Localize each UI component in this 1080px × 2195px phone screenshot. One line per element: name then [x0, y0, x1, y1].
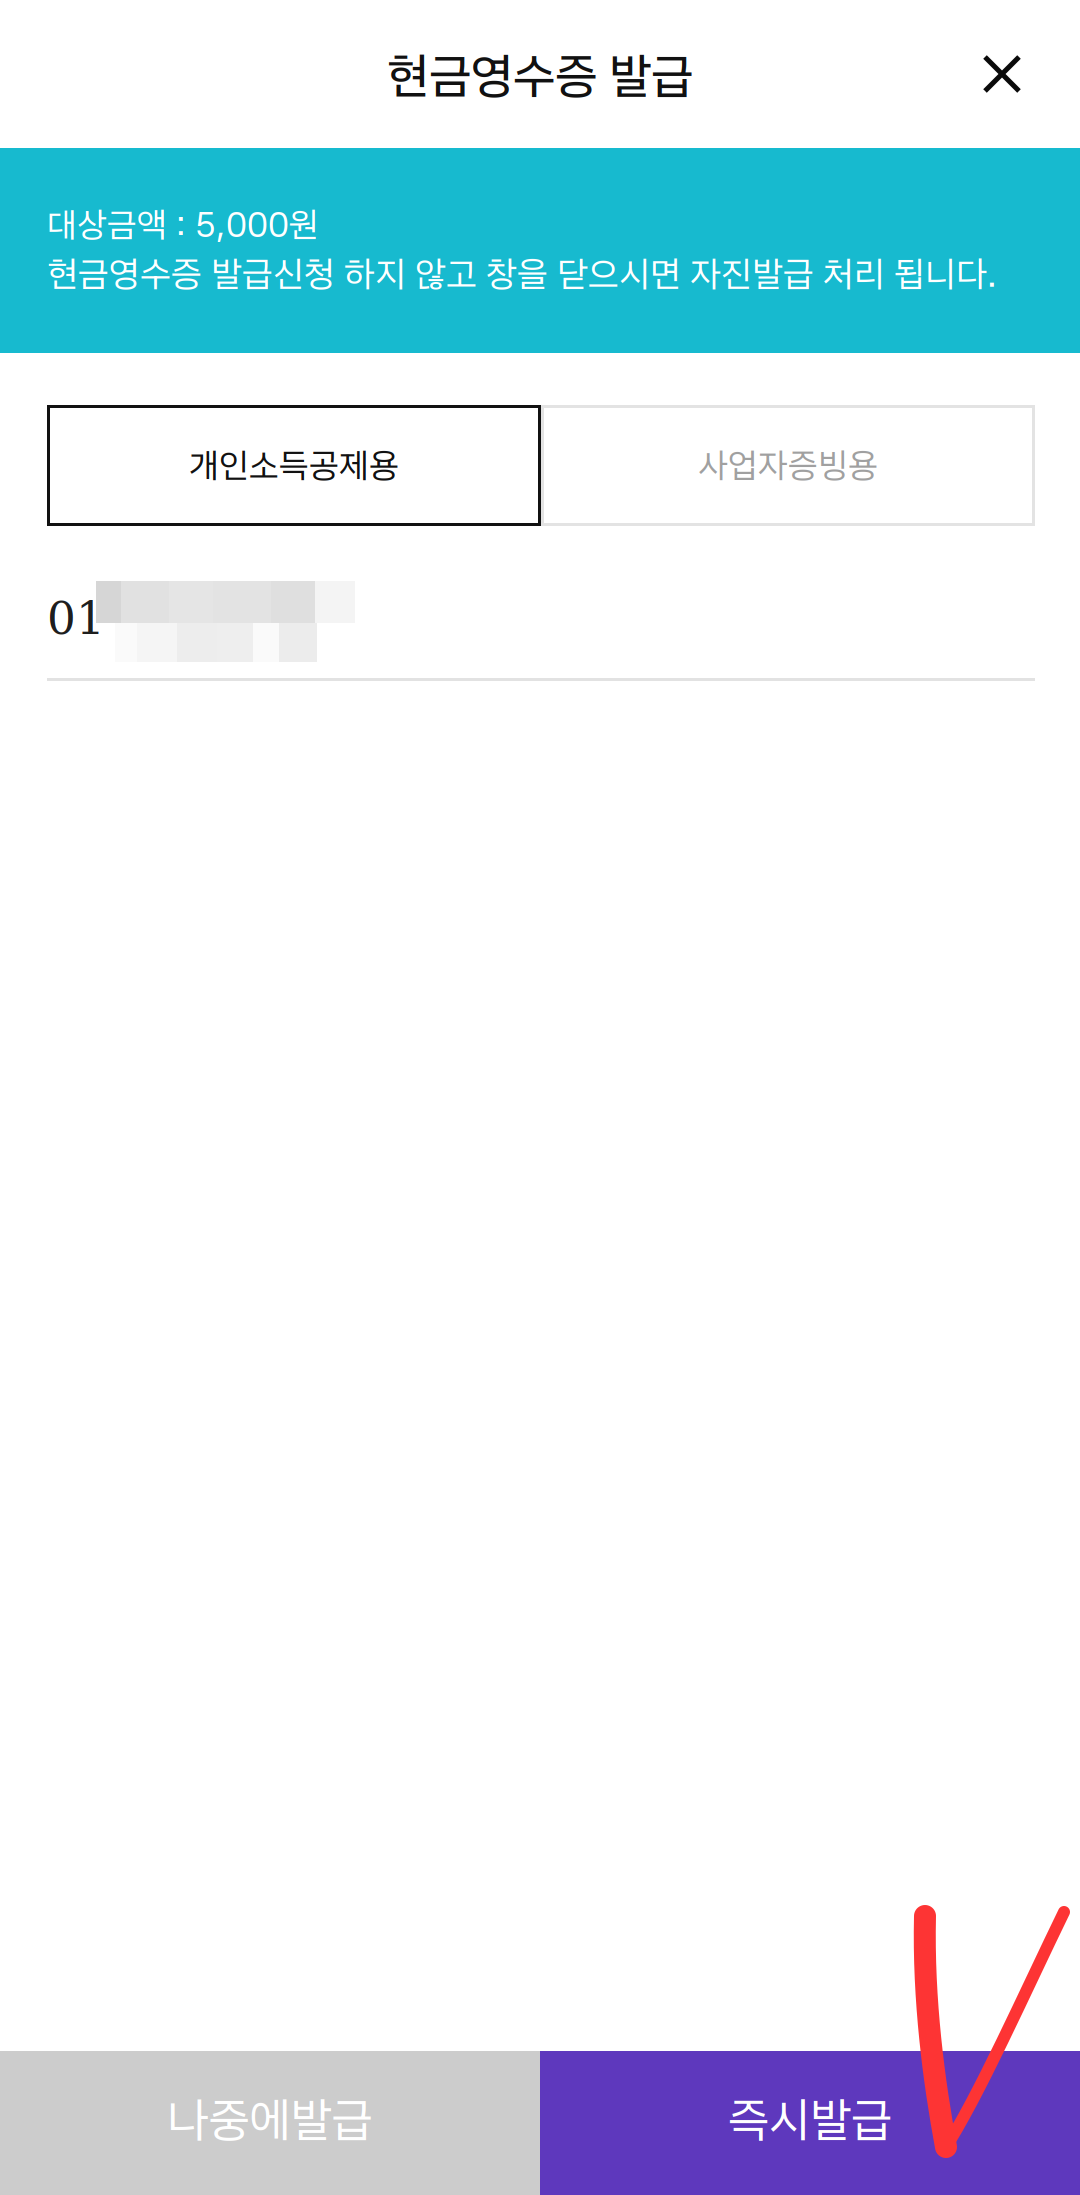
- staticText: 현금영수증 발급신청 하지 않고 창을 닫으시면 자진발급 처리 됩니다.: [47, 252, 997, 295]
- button[interactable]: 사업자증빙용: [541, 405, 1035, 526]
- staticText: 대상금액 : 5,000원: [47, 204, 319, 245]
- button[interactable]: 나중에발급: [0, 2051, 540, 2195]
- button[interactable]: 즉시발급: [540, 2051, 1080, 2195]
- button[interactable]: 개인소득공제용: [47, 405, 541, 526]
- staticText: 현금영수증 발급: [387, 47, 693, 105]
- staticText: 사업자증빙용: [698, 445, 878, 486]
- staticText: 나중에발급: [167, 2091, 372, 2149]
- button[interactable]: 닫기: [943, 15, 1080, 133]
- staticText: 01: [47, 592, 105, 645]
- staticText: 즉시발급: [728, 2091, 892, 2149]
- staticText: 개인소득공제용: [189, 445, 399, 486]
